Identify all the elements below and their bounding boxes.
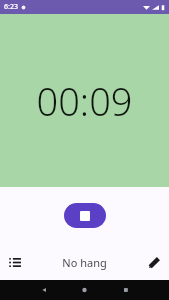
staticText: 6:23: [4, 2, 18, 12]
button[interactable]: Edit: [139, 247, 169, 277]
button[interactable]: Stop: [64, 203, 106, 228]
staticText: No hang: [62, 255, 107, 270]
button[interactable]: Workout list: [0, 247, 30, 277]
staticText: 00:09: [36, 75, 133, 127]
